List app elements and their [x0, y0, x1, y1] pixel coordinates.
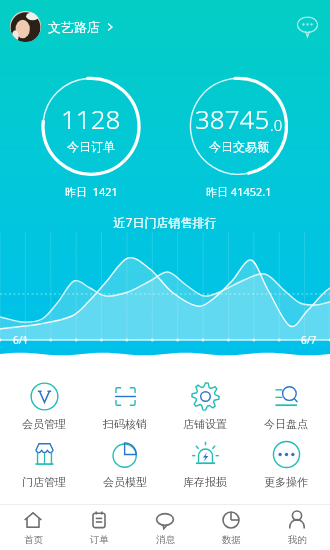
staticText: 6/1	[13, 333, 29, 347]
staticText: 订单	[90, 534, 109, 546]
button[interactable]: 门店管理	[8, 440, 80, 489]
button[interactable]: 文艺路店	[9, 8, 116, 45]
staticText: 库存报损	[183, 475, 227, 489]
staticText: 门店管理	[22, 475, 66, 489]
staticText: 会员模型	[103, 475, 147, 489]
staticText: 消息	[156, 534, 175, 546]
staticText: 6/7	[301, 333, 317, 347]
button[interactable]: 消息	[132, 505, 198, 550]
button[interactable]: 扫码核销	[89, 382, 161, 431]
staticText: 更多操作	[264, 475, 308, 489]
staticText: 38745	[195, 101, 270, 136]
staticText: 文艺路店	[48, 19, 100, 35]
button[interactable]: 会员管理	[8, 382, 80, 431]
staticText: 1128	[61, 101, 121, 136]
staticText: 昨日 41452.1	[206, 184, 272, 199]
staticText: 会员管理	[22, 417, 66, 431]
button[interactable]: 今日盘点	[250, 382, 322, 431]
staticText: 今日订单	[67, 139, 115, 154]
staticText: 今日盘点	[264, 417, 308, 431]
staticText: 近7日门店销售排行	[0, 214, 330, 230]
staticText: 店铺设置	[183, 417, 227, 431]
button[interactable]: 库存报损	[169, 440, 241, 489]
staticText: 扫码核销	[103, 417, 147, 431]
button[interactable]: 会员模型	[89, 440, 161, 489]
button[interactable]: 数据	[198, 505, 264, 550]
staticText: 数据	[222, 534, 241, 546]
button[interactable]: 首页	[0, 505, 66, 550]
button[interactable]: 我的	[264, 505, 330, 550]
button[interactable]: 订单	[66, 505, 132, 550]
staticText: 今日交易额	[209, 139, 269, 154]
staticText: 我的	[288, 534, 307, 546]
button[interactable]: Messages	[294, 13, 320, 39]
button[interactable]: 更多操作	[250, 440, 322, 489]
staticText: 昨日 1421	[65, 184, 118, 199]
staticText: 首页	[24, 534, 43, 546]
button[interactable]: 店铺设置	[169, 382, 241, 431]
staticText: .0	[270, 115, 283, 135]
